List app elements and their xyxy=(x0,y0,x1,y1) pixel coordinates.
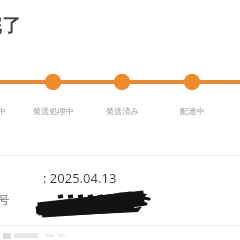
button[interactable]: 発送処理中 xyxy=(23,106,83,120)
button[interactable]: 配送状況 xyxy=(0,62,240,102)
staticText: 配達中 xyxy=(180,106,205,116)
staticText: 中 xyxy=(0,106,7,116)
button[interactable]: 発送済み xyxy=(92,106,152,120)
staticText: 号 xyxy=(0,193,10,207)
button[interactable]: 配達中 xyxy=(162,106,222,120)
staticText: 完了 xyxy=(0,14,21,38)
staticText: 発送処理中 xyxy=(33,106,74,116)
staticText: : 2025.04.13 xyxy=(43,169,117,187)
button[interactable]: : 2025.04.13 xyxy=(0,165,240,193)
staticText: 発送済み xyxy=(106,106,139,116)
